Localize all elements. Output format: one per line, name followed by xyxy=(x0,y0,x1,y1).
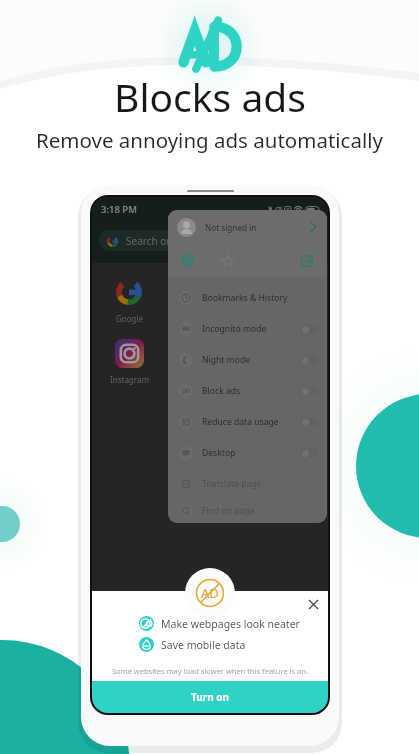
button[interactable]: Google xyxy=(104,275,154,324)
button[interactable]: Close xyxy=(304,595,322,613)
staticText: Night mode xyxy=(202,354,251,366)
button[interactable]: Translate page xyxy=(179,468,318,499)
staticText: Reduce data usage xyxy=(202,416,279,428)
staticText: AD xyxy=(201,584,219,602)
button[interactable]: Desktop xyxy=(179,437,318,468)
button[interactable]: Bookmarks & History xyxy=(179,282,318,313)
staticText: Find on page xyxy=(202,505,255,517)
button[interactable]: Reduce data usage xyxy=(179,406,318,437)
staticText: Turn on xyxy=(191,690,230,704)
staticText: 3:18 PM xyxy=(101,203,137,216)
button[interactable]: Block ads xyxy=(179,375,318,406)
button[interactable]: Not signed in xyxy=(177,210,318,244)
staticText: Some websites may load slower when this … xyxy=(112,666,309,676)
button[interactable]: Exit xyxy=(287,244,327,277)
staticText: Remove annoying ads automatically xyxy=(36,126,383,154)
button[interactable]: Search or type web address xyxy=(99,230,325,251)
staticText: Search or type web address xyxy=(126,234,256,248)
button[interactable]: Instagram xyxy=(104,336,154,385)
button[interactable]: Incognito mode xyxy=(179,313,318,344)
button[interactable]: Night mode xyxy=(179,344,318,375)
staticText: Not signed in xyxy=(205,222,257,233)
staticText: Blocks ads xyxy=(114,70,306,123)
staticText: Save mobile data xyxy=(161,638,246,652)
staticText: Make webpages look neater xyxy=(161,617,300,631)
button[interactable]: Settings xyxy=(168,244,207,277)
staticText: Incognito mode xyxy=(202,323,267,335)
staticText: Google xyxy=(116,313,143,324)
staticText: Translate page xyxy=(202,478,262,490)
button[interactable]: Find on page xyxy=(179,499,318,523)
staticText: Instagram xyxy=(110,374,149,385)
staticText: Desktop xyxy=(202,447,236,459)
button[interactable]: Turn on xyxy=(92,681,328,713)
staticText: Bookmarks & History xyxy=(202,292,288,304)
staticText: Block ads xyxy=(202,385,241,397)
